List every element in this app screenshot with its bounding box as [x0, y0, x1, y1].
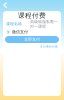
staticText: 支付遇到问题 — [40, 45, 58, 48]
button[interactable]: 立即支付 — [5, 36, 59, 43]
staticText: 微信支付 — [12, 29, 28, 34]
button[interactable]: 支付遇到问题 — [40, 45, 58, 48]
button[interactable]: Back — [0, 0, 11, 11]
staticText: 课程名称 — [6, 21, 22, 26]
staticText: ¥ — [7, 29, 9, 35]
staticText: 课程付费 — [18, 11, 46, 20]
staticText: 高级瑜伽私教一对一课程 — [30, 19, 58, 29]
staticText: 立即支付 — [24, 37, 40, 42]
